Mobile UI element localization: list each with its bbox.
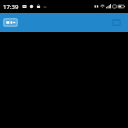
button[interactable]: Overview [111,17,122,28]
staticText: 17:39 [3,3,19,11]
button[interactable]: Navigate up [3,18,18,27]
